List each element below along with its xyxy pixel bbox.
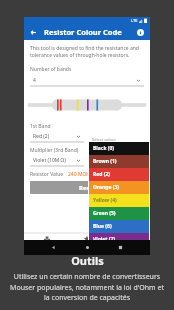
staticText: Violet (10M Ω) [33, 157, 66, 164]
button[interactable]: 4 [30, 75, 144, 86]
button[interactable]: Yellow (4) [89, 194, 149, 207]
other: Recents [117, 244, 124, 251]
button[interactable]: Red (2) [89, 168, 149, 181]
staticText: 240 MOhms ± [68, 171, 101, 178]
staticText: 4 [33, 77, 36, 84]
button[interactable]: Reset [30, 181, 144, 194]
staticText: Black (0) [93, 145, 115, 152]
staticText: Saved [82, 244, 92, 249]
staticText: Blue (6) [93, 223, 112, 230]
staticText: Outils [71, 253, 104, 268]
button[interactable]: Grey (8) [89, 246, 149, 254]
staticText: Violet (7) [93, 236, 116, 243]
staticText: Reset [79, 184, 96, 192]
button[interactable]: Back [29, 28, 38, 37]
staticText: Yellow (4) [93, 197, 117, 204]
button[interactable]: Brown (1) [89, 155, 149, 168]
button[interactable]: Red (2) [30, 131, 84, 142]
staticText: Basket [121, 244, 133, 249]
button[interactable]: Info [135, 27, 145, 37]
button[interactable]: Black (0) [89, 142, 149, 155]
button[interactable]: Blue (6) [89, 220, 149, 233]
button[interactable]: Products [30, 234, 64, 250]
staticText: Resistor Value [30, 171, 64, 178]
staticText: This tool is designed to find the resist… [30, 45, 144, 59]
button[interactable]: Violet (7) [89, 233, 149, 246]
staticText: Products [40, 244, 55, 249]
staticText: Red (2) [33, 133, 50, 140]
staticText: 1st Band [30, 123, 51, 130]
other: Back [50, 244, 57, 251]
staticText: Select colour [92, 137, 117, 142]
staticText: Green (5) [93, 210, 116, 217]
staticText: LTE [131, 18, 138, 23]
button[interactable]: Basket [110, 234, 144, 250]
button[interactable]: Orange (3) [89, 181, 149, 194]
other: Home [84, 244, 91, 251]
staticText: Orange (3) [93, 184, 120, 191]
staticText: Number of bands [30, 66, 72, 73]
button[interactable]: Violet (10M Ω) [30, 155, 84, 166]
button[interactable]: Saved [70, 234, 104, 250]
staticText: Multiplier (3rd Band) [30, 147, 79, 154]
staticText: Brown (1) [93, 158, 117, 165]
staticText: Utilisez un certain nombre de convertiss… [8, 272, 166, 302]
staticText: Red (2) [93, 171, 110, 178]
staticText: Resistor Colour Code [44, 27, 122, 37]
button[interactable]: Green (5) [89, 207, 149, 220]
